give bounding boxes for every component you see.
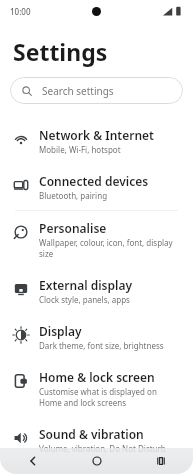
- button[interactable]: Personalise: [0, 211, 193, 268]
- staticText: Display: [39, 323, 82, 339]
- staticText: External display: [39, 277, 133, 293]
- button[interactable]: Home: [65, 448, 129, 474]
- button[interactable]: Home & lock screen: [0, 360, 193, 417]
- staticText: Settings: [13, 36, 108, 67]
- staticText: Clock style, panels, apps: [39, 294, 130, 305]
- button[interactable]: Back: [0, 448, 65, 474]
- staticText: Search settings: [42, 84, 114, 98]
- staticText: 10:00: [10, 6, 31, 17]
- staticText: Dark theme, font size, brightness: [39, 340, 164, 351]
- staticText: Network & Internet: [39, 127, 154, 143]
- staticText: Wallpaper, colour, icon, font, display s…: [39, 237, 181, 259]
- button[interactable]: Notifications: [0, 463, 193, 474]
- staticText: Customise what is displayed on Home and …: [39, 386, 181, 408]
- staticText: Mobile, Wi-Fi, hotspot: [39, 144, 121, 155]
- staticText: Bluetooth, pairing: [39, 190, 108, 201]
- staticText: Volume, vibration, Do Not Disturb: [39, 443, 166, 454]
- button[interactable]: Search settings: [10, 77, 183, 104]
- button[interactable]: Recents: [129, 448, 193, 474]
- button[interactable]: External display: [0, 268, 193, 314]
- button[interactable]: Sound & vibration: [0, 417, 193, 463]
- button[interactable]: Network & Internet: [0, 118, 193, 164]
- button[interactable]: Display: [0, 314, 193, 360]
- staticText: Connected devices: [39, 173, 149, 189]
- staticText: Personalise: [39, 220, 107, 236]
- staticText: Sound & vibration: [39, 426, 144, 442]
- button[interactable]: Connected devices: [0, 164, 193, 210]
- staticText: Home & lock screen: [39, 369, 155, 385]
